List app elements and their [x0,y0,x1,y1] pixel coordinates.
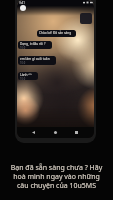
staticText: Lành ^^ [20,73,32,77]
button[interactable]: Home [50,127,61,138]
button[interactable]: Profile picture [20,5,26,11]
staticText: em làm gì cuối tuần này [20,57,54,61]
staticText: Dạng, ở đâu rồi ? [20,42,46,46]
staticText: 10:0 [20,77,26,80]
button[interactable]: Recent apps [71,127,82,138]
staticText: 10:0 [20,61,26,65]
staticText: Chào bé! Đã sẵn sàng chưa ? [39,31,74,35]
button[interactable]: More options [80,13,92,24]
staticText: Bạn đã sẵn sàng chưa ? Hãy hoà mình ngay… [8,163,105,190]
button[interactable]: Chào bé! Đã sẵn sàng chưa ? [37,30,76,37]
button[interactable]: Dạng, ở đâu rồi ? [18,41,52,49]
button[interactable]: em làm gì cuối tuần này [18,56,56,65]
button[interactable]: Back [28,127,39,138]
staticText: 9:41 [19,1,25,5]
staticText: 10:0 [20,46,26,49]
button[interactable]: Lành ^^ [18,72,38,80]
